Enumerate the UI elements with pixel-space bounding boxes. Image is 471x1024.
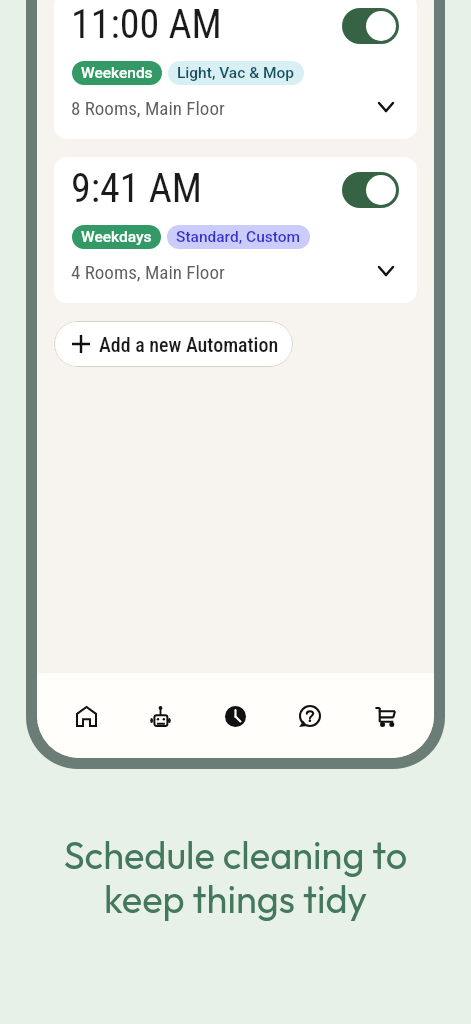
staticText: 9:41 AM [71,165,203,212]
button[interactable]: Add a new Automation [54,321,293,367]
staticText: Schedule cleaning to keep things tidy [0,831,471,923]
staticText: Weekends [81,64,153,82]
staticText: 4 Rooms, Main Floor [71,261,225,283]
button[interactable]: 9:41 AM [54,157,417,303]
staticText: Add a new Automation [99,333,279,356]
staticText: 11:00 AM [71,1,222,48]
button[interactable]: Light, Vac & Mop [168,61,304,85]
button[interactable]: Toggle automation [342,172,399,208]
staticText: Standard, Custom [176,228,301,246]
staticText: 8 Rooms, Main Floor [71,97,225,119]
staticText: Light, Vac & Mop [177,64,295,82]
button[interactable]: Weekdays [72,225,161,249]
button[interactable]: Automations [123,673,197,758]
button[interactable]: Standard, Custom [167,225,310,249]
staticText: Weekdays [81,228,152,246]
button[interactable]: 11:00 AM [54,0,417,139]
button[interactable]: Schedule [197,673,272,758]
button[interactable]: Shop [347,673,422,758]
button[interactable]: Toggle automation [342,8,399,44]
button[interactable]: Home [49,673,123,758]
button[interactable]: Help [272,673,347,758]
button[interactable]: Weekends [72,61,162,85]
